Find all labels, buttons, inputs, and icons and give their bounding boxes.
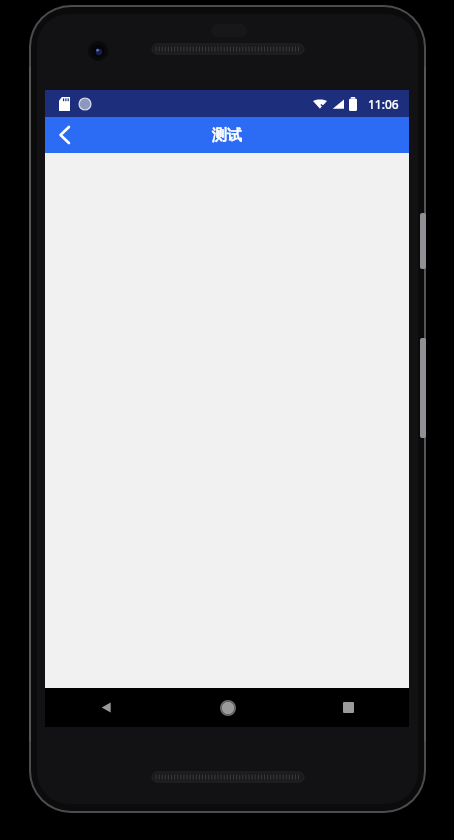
button[interactable]: Recent apps <box>288 688 409 727</box>
button[interactable]: Back <box>45 117 85 153</box>
staticText: 测试 <box>212 126 242 145</box>
button[interactable]: Home <box>167 688 288 727</box>
staticText: 11:06 <box>368 96 399 112</box>
button[interactable]: Back <box>45 688 167 727</box>
